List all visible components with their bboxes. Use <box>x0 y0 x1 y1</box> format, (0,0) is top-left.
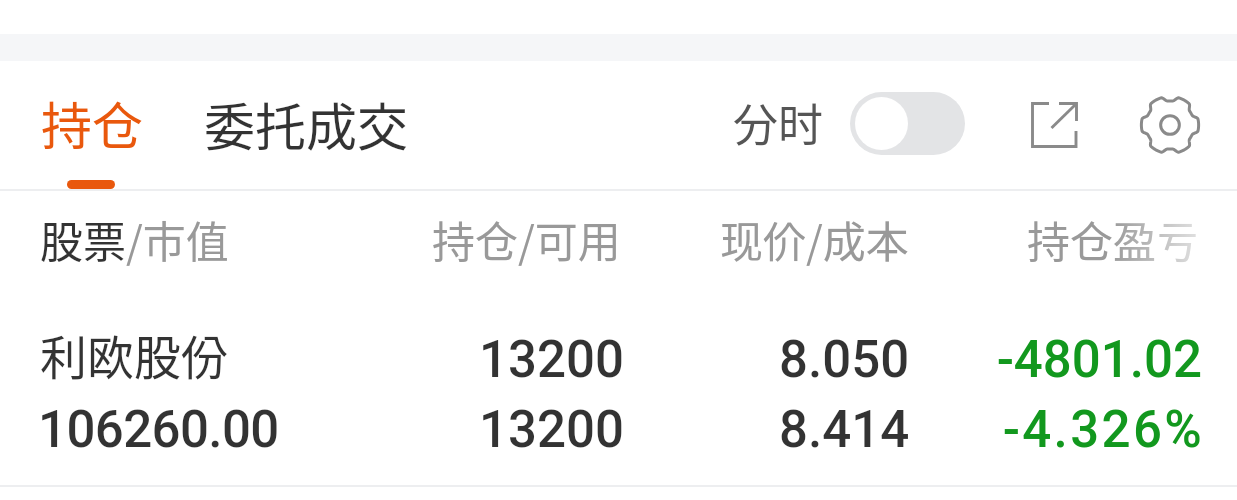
staticText: 持仓/可用 <box>432 208 621 270</box>
button[interactable]: 利欧股份 <box>0 292 1237 486</box>
button[interactable]: 委托成交 <box>180 61 430 189</box>
button[interactable]: 持仓 <box>10 61 170 189</box>
staticText: -4801.02 <box>997 330 1202 390</box>
button[interactable]: 分时 <box>710 61 982 189</box>
button[interactable]: Open in new window <box>1006 61 1102 189</box>
staticText: 8.050 <box>779 330 910 390</box>
staticText: 委托成交 <box>204 87 409 161</box>
staticText: 分时 <box>733 90 824 155</box>
staticText: -4.326% <box>1003 400 1205 460</box>
button[interactable]: Settings <box>1120 61 1220 189</box>
staticText: 股票/市值 <box>40 208 229 270</box>
staticText: 持仓 <box>41 86 144 160</box>
staticText: 106260.00 <box>38 400 279 460</box>
staticText: 8.414 <box>779 400 910 460</box>
staticText: 利欧股份 <box>40 320 228 388</box>
staticText: 13200 <box>479 330 624 390</box>
staticText: 现价/成本 <box>720 208 909 270</box>
staticText: 持仓盈亏 <box>1027 208 1199 270</box>
staticText: 13200 <box>479 400 624 460</box>
